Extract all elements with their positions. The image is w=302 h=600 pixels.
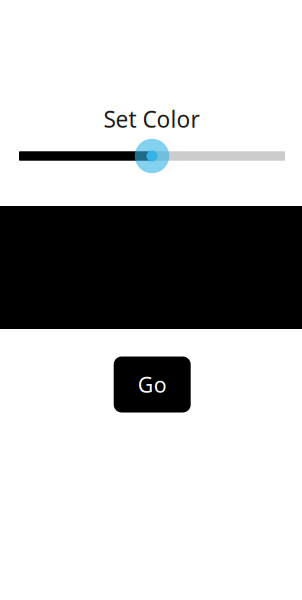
staticText: Set Color — [103, 104, 199, 134]
button[interactable]: Go — [114, 356, 191, 412]
button[interactable]: Color amount — [0, 134, 302, 178]
staticText: Go — [138, 370, 167, 399]
